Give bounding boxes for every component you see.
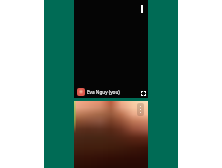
button[interactable]: Fullscreen — [141, 91, 146, 96]
staticText: Eva Nguy (you) — [87, 89, 120, 95]
button[interactable]: More options — [137, 103, 144, 116]
